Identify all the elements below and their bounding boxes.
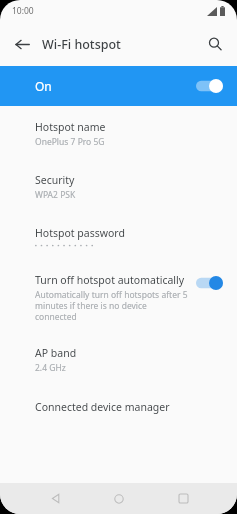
- staticText: Turn off hotspot automatically: [35, 273, 185, 287]
- button[interactable]: AP band: [0, 334, 237, 387]
- staticText: 10:00: [12, 5, 34, 17]
- button[interactable]: Search: [199, 28, 231, 60]
- button[interactable]: Hotspot name: [0, 106, 237, 161]
- staticText: Hotspot name: [35, 120, 106, 134]
- staticText: WPA2 PSK: [35, 189, 76, 201]
- staticText: On: [35, 78, 52, 94]
- button[interactable]: On: [0, 66, 237, 106]
- button[interactable]: Recent apps: [161, 483, 205, 514]
- staticText: Hotspot password: [35, 226, 125, 240]
- button[interactable]: Hotspot password: [0, 214, 237, 261]
- button[interactable]: Security: [0, 161, 237, 214]
- button[interactable]: Turn off hotspot automatically: [0, 261, 237, 334]
- staticText: Security: [35, 173, 75, 187]
- button[interactable]: Back: [6, 28, 38, 60]
- button[interactable]: Connected device manager: [0, 387, 237, 428]
- staticText: Connected device manager: [35, 400, 170, 414]
- button[interactable]: Home: [97, 483, 141, 514]
- staticText: OnePlus 7 Pro 5G: [35, 136, 105, 148]
- staticText: 2.4 GHz: [35, 362, 66, 374]
- button[interactable]: Back: [33, 483, 77, 514]
- staticText: AP band: [35, 346, 77, 360]
- staticText: Automatically turn off hotspots after 5 …: [35, 289, 190, 322]
- staticText: Wi-Fi hotspot: [42, 36, 121, 53]
